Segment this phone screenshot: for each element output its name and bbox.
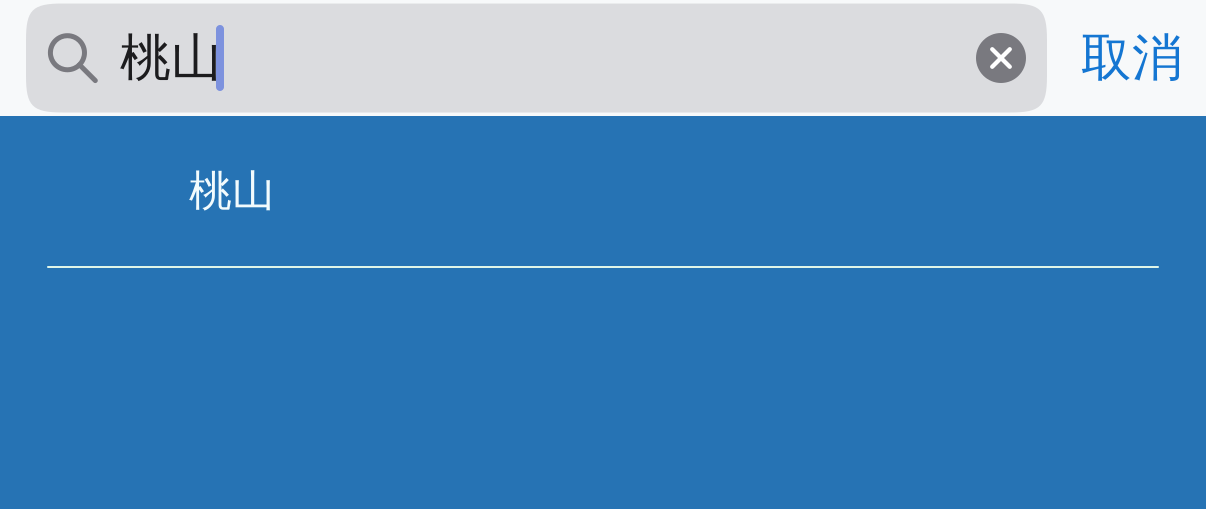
staticText: 桃山 — [189, 165, 275, 217]
button[interactable]: 取消 — [1064, 3, 1200, 112]
staticText: 桃山 — [120, 27, 222, 89]
button[interactable]: Clear text — [955, 3, 1047, 112]
button[interactable]: 桃山 — [0, 116, 1206, 266]
button[interactable]: Search field, 桃山 — [26, 3, 1047, 112]
staticText: 取消 — [1081, 27, 1183, 89]
